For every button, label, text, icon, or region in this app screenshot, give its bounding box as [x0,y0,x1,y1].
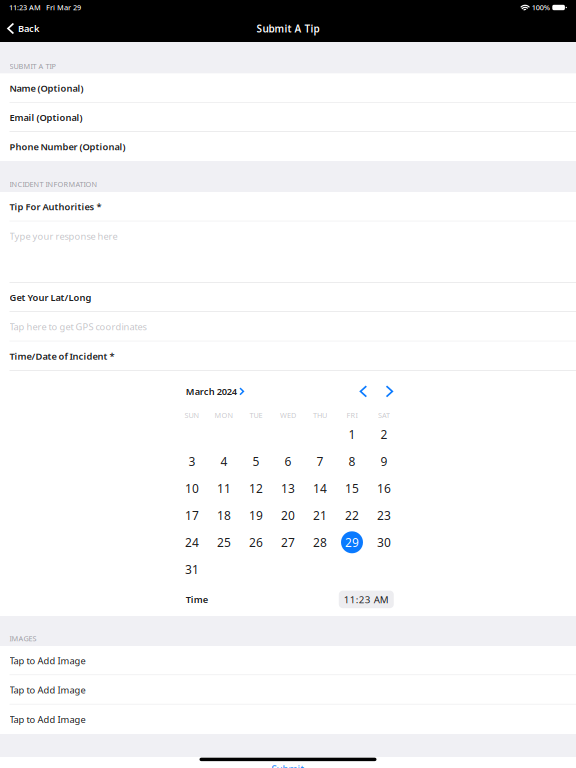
staticText: Tap to Add Image [9,713,85,725]
button[interactable]: 6 [272,448,304,475]
button[interactable]: 4 [208,448,240,475]
staticText: Tip For Authorities * [9,201,101,213]
button[interactable]: 27 [272,529,304,556]
button[interactable]: 7 [304,448,336,475]
staticText: 18 [217,507,231,523]
button[interactable]: Phone Number (Optional) [0,132,576,161]
button[interactable]: Tip For Authorities * [0,192,576,221]
staticText: MON [214,410,233,420]
button[interactable]: 31 [176,556,208,583]
staticText: 8 [348,453,355,469]
staticText: 14 [313,480,327,496]
button[interactable]: 14 [304,475,336,502]
staticText: 20 [281,507,295,523]
button[interactable]: 11:23 AM [339,591,394,608]
button[interactable]: March 2024 [186,379,243,404]
staticText: 23 [377,507,391,523]
staticText: 26 [249,534,263,550]
staticText: SUBMIT A TIP [9,61,55,71]
staticText: 11:23 AM [344,593,389,606]
button[interactable]: 23 [368,502,400,529]
button[interactable]: 10 [176,475,208,502]
button[interactable]: 17 [176,502,208,529]
staticText: IMAGES [9,633,36,643]
button[interactable]: 1 [336,421,368,448]
button[interactable]: 13 [272,475,304,502]
button[interactable]: Tap to Add Image [0,646,576,675]
staticText: 31 [185,561,199,577]
button[interactable]: 29 [336,529,368,556]
staticText: Name (Optional) [9,82,83,94]
staticText: Email (Optional) [9,111,82,124]
button[interactable]: 30 [368,529,400,556]
button[interactable]: Submit [271,763,304,768]
staticText: 4 [220,453,227,469]
staticText: 21 [313,507,327,523]
button[interactable]: 24 [176,529,208,556]
staticText: 15 [345,480,359,496]
staticText: 6 [284,453,291,469]
button[interactable]: Previous month [355,382,371,400]
button[interactable]: Back [0,16,39,41]
staticText: 16 [377,480,391,496]
staticText: 22 [345,507,359,523]
staticText: 3 [188,453,195,469]
button[interactable]: Tap here to get GPS coordinates [0,312,576,341]
button[interactable]: 18 [208,502,240,529]
staticText: Get Your Lat/Long [9,291,91,304]
staticText: THU [313,410,327,420]
button[interactable]: 25 [208,529,240,556]
staticText: 28 [313,534,327,550]
staticText: Fri Mar 29 [46,3,81,12]
staticText: 10 [185,480,199,496]
button[interactable]: 9 [368,448,400,475]
staticText: Tap to Add Image [9,684,85,696]
button[interactable]: Email (Optional) [0,103,576,132]
staticText: SAT [378,410,390,420]
staticText: Back [18,22,39,35]
button[interactable]: Next month [381,382,397,400]
staticText: Tap to Add Image [9,654,85,667]
staticText: Submit A Tip [256,22,319,35]
staticText: FRI [346,410,357,420]
button[interactable]: Time/Date of Incident * [0,341,576,371]
button[interactable]: 20 [272,502,304,529]
staticText: 9 [380,453,387,469]
staticText: Time/Date of Incident * [9,350,114,362]
staticText: 30 [377,534,391,550]
staticText: WED [280,410,296,420]
button[interactable]: 5 [240,448,272,475]
staticText: TUE [249,410,262,420]
button[interactable]: Name (Optional) [0,74,576,103]
staticText: 12 [249,480,263,496]
button[interactable]: 26 [240,529,272,556]
button[interactable]: 11 [208,475,240,502]
button[interactable]: 21 [304,502,336,529]
button[interactable]: 22 [336,502,368,529]
staticText: Time [186,593,208,606]
button[interactable]: Get Your Lat/Long [0,283,576,312]
button[interactable]: 12 [240,475,272,502]
staticText: 29 [345,534,359,550]
button[interactable]: 2 [368,421,400,448]
button[interactable]: Tap to Add Image [0,705,576,734]
button[interactable]: 3 [176,448,208,475]
staticText: SUN [184,410,199,420]
staticText: Tap here to get GPS coordinates [9,321,146,333]
staticText: 24 [185,534,199,550]
staticText: 25 [217,534,231,550]
button[interactable]: 28 [304,529,336,556]
staticText: 1 [348,426,355,442]
button[interactable]: 15 [336,475,368,502]
button[interactable]: Type your response here [0,221,576,283]
staticText: 5 [252,453,259,469]
button[interactable]: 16 [368,475,400,502]
button[interactable]: 19 [240,502,272,529]
button[interactable]: 8 [336,448,368,475]
staticText: 13 [281,480,295,496]
staticText: March 2024 [186,385,237,398]
staticText: Phone Number (Optional) [9,140,125,153]
button[interactable]: Tap to Add Image [0,675,576,705]
staticText: 100% [532,3,550,12]
staticText: 27 [281,534,295,550]
